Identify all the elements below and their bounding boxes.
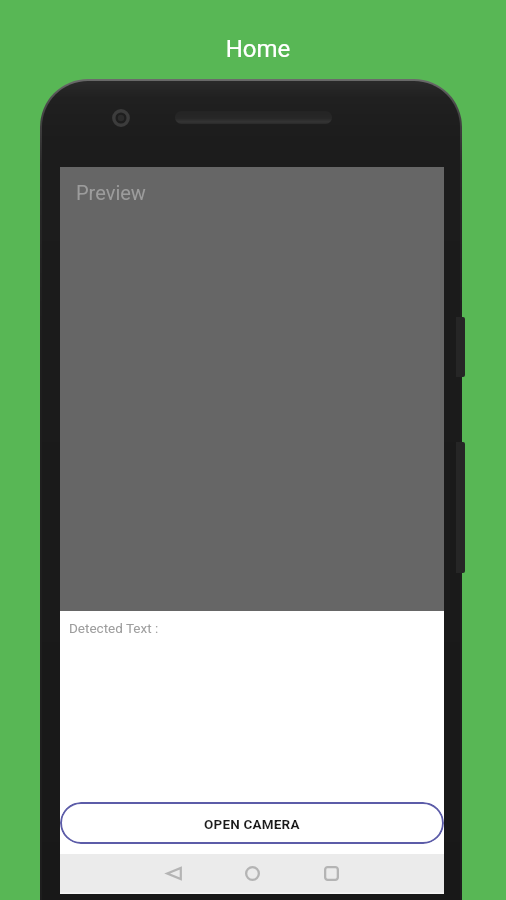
staticText: Detected Text : [69,620,159,636]
button[interactable]: Home [232,853,272,893]
staticText: Preview [76,181,146,204]
button[interactable]: OPEN CAMERA [60,802,444,844]
button[interactable]: Back [154,853,194,893]
staticText: OPEN CAMERA [204,816,300,832]
button[interactable]: Recent apps [311,853,351,893]
staticText: Home [5,35,506,63]
